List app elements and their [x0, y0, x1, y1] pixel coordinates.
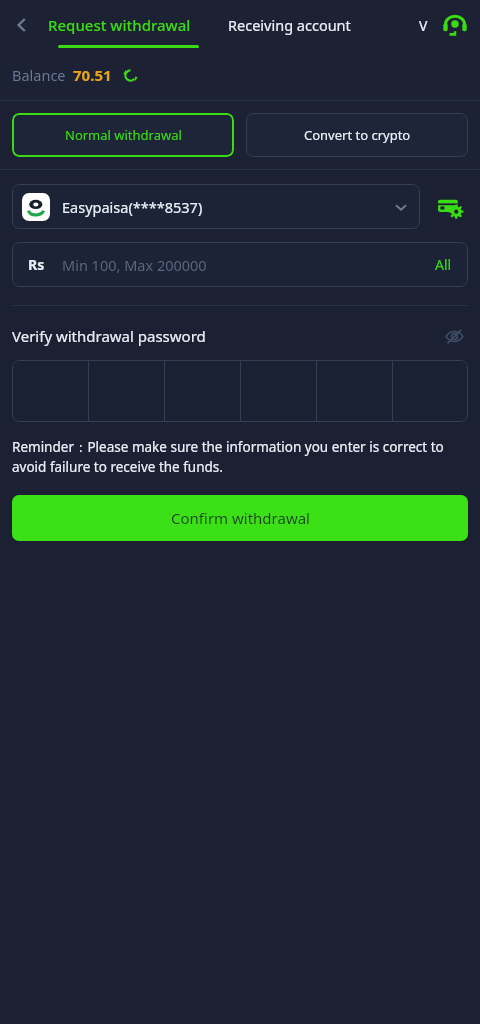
staticText: Rs: [28, 255, 45, 274]
button[interactable]: [317, 360, 392, 422]
button[interactable]: Manage cards: [432, 189, 468, 225]
button[interactable]: Customer service: [434, 4, 476, 46]
staticText: Min 100, Max 200000: [62, 255, 207, 275]
button[interactable]: Confirm withdrawal: [12, 495, 468, 541]
button[interactable]: All: [435, 255, 452, 274]
staticText: V: [419, 16, 428, 35]
button[interactable]: Request withdrawal: [48, 0, 191, 50]
button[interactable]: Convert to crypto: [246, 113, 468, 157]
staticText: Easypaisa(****8537): [62, 197, 203, 217]
staticText: Confirm withdrawal: [171, 508, 310, 528]
staticText: Verify withdrawal password: [12, 326, 206, 346]
button[interactable]: Refresh balance: [118, 63, 142, 87]
button[interactable]: Normal withdrawal: [12, 113, 234, 157]
staticText: Reminder：Please make sure the informatio…: [12, 438, 468, 476]
button[interactable]: Easypaisa(****8537): [12, 184, 420, 229]
button[interactable]: Rs: [12, 242, 468, 287]
staticText: Convert to crypto: [304, 126, 411, 144]
staticText: All: [435, 255, 452, 274]
button[interactable]: [393, 360, 468, 422]
staticText: Normal withdrawal: [65, 126, 182, 144]
staticText: Balance: [12, 65, 66, 85]
button[interactable]: Back: [0, 3, 44, 47]
staticText: Request withdrawal: [48, 15, 191, 35]
button[interactable]: [12, 360, 88, 422]
button[interactable]: Receiving account: [228, 0, 351, 50]
button[interactable]: Toggle password visibility: [440, 322, 468, 350]
button[interactable]: [165, 360, 240, 422]
staticText: Receiving account: [228, 15, 351, 35]
button[interactable]: [241, 360, 316, 422]
staticText: 70.51: [73, 65, 112, 85]
button[interactable]: [89, 360, 164, 422]
